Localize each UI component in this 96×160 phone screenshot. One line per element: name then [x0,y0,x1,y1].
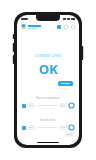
button[interactable]: Help [63,24,68,29]
button[interactable]: Menu [70,24,75,29]
staticText: max [61,126,66,129]
button[interactable]: DETAILS [58,81,73,86]
staticText: CURRENT LEVEL [35,54,62,58]
staticText: DETAILS [61,82,70,85]
button[interactable]: min [22,125,74,130]
button[interactable]: more [65,132,74,137]
staticText: OK [39,60,58,78]
staticText: max [61,104,66,107]
button[interactable]: Notifications [56,24,61,29]
staticText: Sound alerts [40,118,56,122]
button[interactable]: min [22,103,74,108]
staticText: min [29,126,33,129]
staticText: more [67,133,72,136]
staticText: Room temperature [36,96,60,100]
staticText: min [29,104,33,107]
